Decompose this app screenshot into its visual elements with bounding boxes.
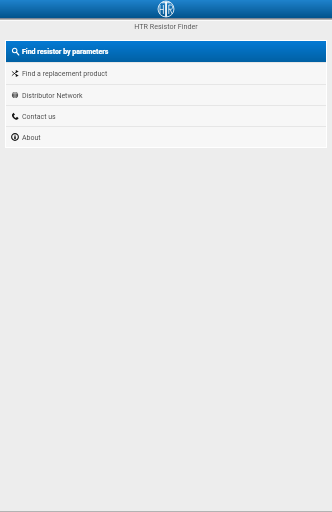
other: HTR logo bbox=[157, 0, 175, 18]
button[interactable]: About bbox=[6, 127, 326, 147]
button[interactable]: Contact us bbox=[6, 106, 326, 126]
staticText: Distributor Network bbox=[22, 92, 83, 100]
staticText: HTR Resistor Finder bbox=[134, 22, 198, 30]
staticText: Contact us bbox=[22, 113, 56, 121]
button[interactable]: Find resistor by parameters bbox=[6, 41, 326, 62]
staticText: About bbox=[22, 134, 41, 142]
button[interactable]: Find a replacement product bbox=[6, 63, 326, 84]
button[interactable]: Distributor Network bbox=[6, 85, 326, 105]
staticText: Find a replacement product bbox=[22, 70, 108, 78]
staticText: Find resistor by parameters bbox=[22, 48, 109, 56]
